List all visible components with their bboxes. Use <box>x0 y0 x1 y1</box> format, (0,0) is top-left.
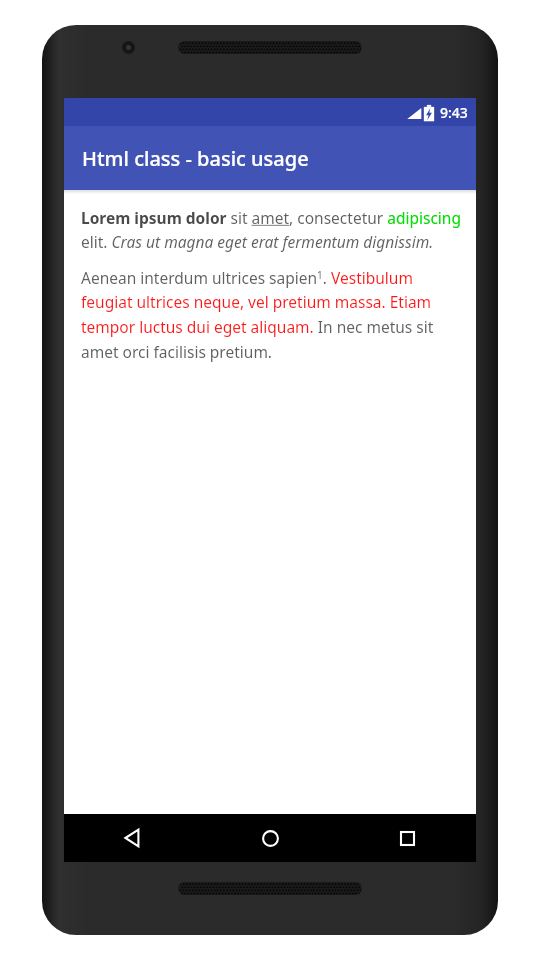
button[interactable]: Home <box>202 814 339 862</box>
staticText: Html class - basic usage <box>82 145 309 172</box>
staticText: 9:43 <box>440 103 468 122</box>
button[interactable]: Back <box>64 814 202 862</box>
button[interactable]: Recent apps <box>339 814 476 862</box>
staticText: Lorem ipsum dolor sit amet, consectetur … <box>81 207 462 363</box>
button[interactable]: Html class - basic usage <box>64 126 476 190</box>
